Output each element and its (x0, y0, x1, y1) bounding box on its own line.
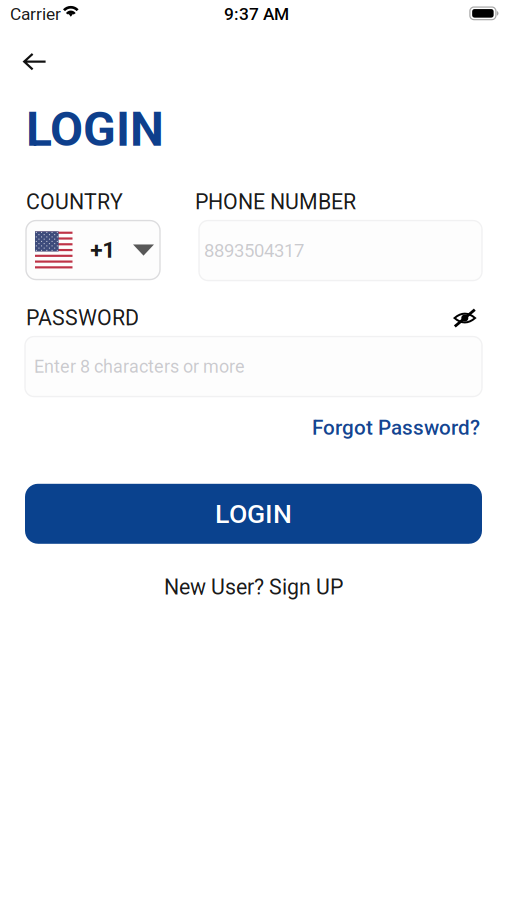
staticText: +1 (90, 237, 115, 263)
button[interactable]: +1 (26, 220, 160, 279)
staticText: PHONE NUMBER (195, 190, 356, 215)
staticText: Carrier (10, 4, 61, 24)
button[interactable]: Forgot Password? (312, 415, 480, 440)
staticText: 9:37 AM (224, 4, 289, 24)
staticText: Forgot Password? (312, 415, 480, 440)
staticText: New User? Sign UP (164, 575, 343, 600)
staticText: LOGIN (215, 498, 292, 529)
staticText: 8893504317 (204, 240, 304, 261)
button[interactable]: New User? Sign UP (164, 575, 343, 600)
button[interactable]: Show password (454, 309, 476, 327)
staticText: COUNTRY (26, 190, 123, 215)
button[interactable]: LOGIN (25, 484, 482, 544)
staticText: PASSWORD (26, 305, 139, 330)
button[interactable]: Back (0, 42, 60, 81)
staticText: LOGIN (26, 101, 164, 157)
staticText: Enter 8 characters or more (34, 356, 245, 377)
